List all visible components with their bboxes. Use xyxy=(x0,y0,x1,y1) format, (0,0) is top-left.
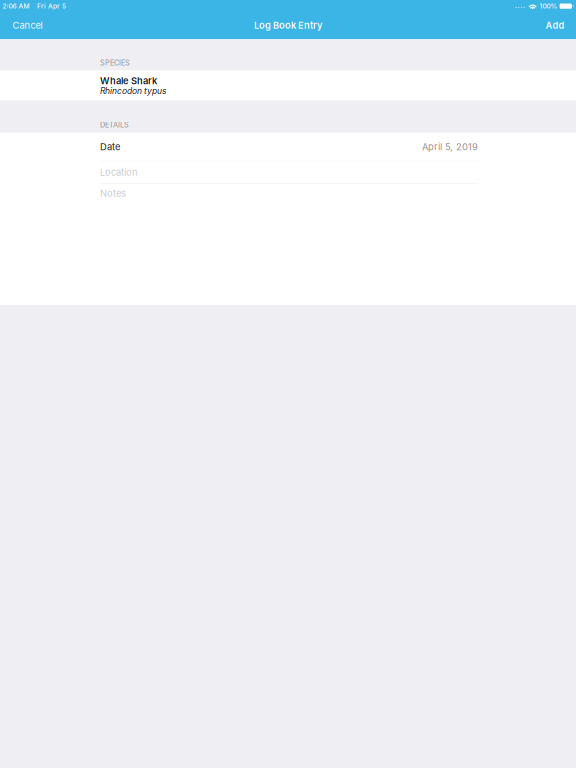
button[interactable]: Add xyxy=(534,12,576,39)
staticText: Whale Shark xyxy=(100,75,157,86)
staticText: SPECIES xyxy=(100,58,130,67)
staticText: Rhincodon typus xyxy=(100,86,167,96)
staticText: 100% xyxy=(539,2,557,10)
button[interactable]: Whale Shark xyxy=(0,70,576,100)
staticText: Fri Apr 5 xyxy=(37,2,66,10)
button[interactable]: Location xyxy=(0,162,576,183)
staticText: Location xyxy=(100,167,138,178)
staticText: Notes xyxy=(100,188,126,199)
button[interactable]: Cancel xyxy=(0,12,55,39)
staticText: Log Book Entry xyxy=(254,20,322,31)
button[interactable]: Date xyxy=(0,133,576,161)
staticText: April 5, 2019 xyxy=(422,141,478,152)
staticText: Date xyxy=(100,141,120,152)
staticText: 2:06 AM xyxy=(3,2,30,10)
staticText: Cancel xyxy=(12,20,42,31)
staticText: Add xyxy=(545,20,564,31)
staticText: DETAILS xyxy=(100,120,129,129)
